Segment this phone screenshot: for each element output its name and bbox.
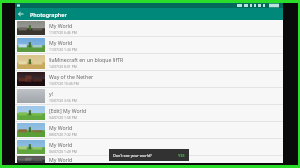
button[interactable]: My World: [15, 156, 283, 163]
staticText: 04/07/20 1:58 PM: [49, 115, 77, 120]
staticText: 10/07/20 3:56 PM: [49, 98, 77, 103]
staticText: [Edit] My World: [49, 107, 87, 114]
staticText: 13/07/20 10:46 PM: [49, 81, 79, 86]
staticText: YES: [178, 153, 185, 158]
button[interactable]: Way of the Nether: [15, 71, 283, 88]
button[interactable]: My World: [15, 122, 283, 139]
staticText: y!: [49, 90, 54, 97]
button[interactable]: My World: [15, 37, 283, 54]
button[interactable]: Don't see your world?: [109, 149, 189, 161]
staticText: My World: [49, 22, 73, 29]
staticText: 06/07/20 1:49 PM: [49, 149, 77, 154]
staticText: My World: [49, 156, 73, 163]
button[interactable]: My World: [15, 20, 283, 37]
staticText: §aMinecraft en un bloque §fTR: [49, 56, 124, 63]
button[interactable]: §aMinecraft en un bloque §fTR: [15, 54, 283, 71]
staticText: My World: [49, 39, 73, 46]
button[interactable]: Back: [15, 8, 27, 20]
staticText: My World: [49, 124, 73, 131]
button[interactable]: My World: [15, 139, 283, 156]
staticText: Photographer: [30, 11, 67, 18]
staticText: 08/07/20 7:32 PM: [49, 132, 77, 137]
button[interactable]: [Edit] My World: [15, 105, 283, 122]
staticText: 14/07/20 8:01 PM: [49, 64, 77, 69]
staticText: Don't see your world?: [113, 153, 178, 158]
staticText: Way of the Nether: [49, 73, 94, 80]
button[interactable]: y!: [15, 88, 283, 105]
staticText: My World: [49, 141, 73, 148]
staticText: 11/07/20 1:34 PM: [49, 47, 77, 52]
staticText: 11/07/20 6:46 PM: [49, 30, 77, 35]
